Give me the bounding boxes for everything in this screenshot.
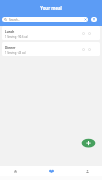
staticText: 1 Serving · 43 cal (5, 51, 26, 55)
button[interactable]: Delete (88, 48, 91, 51)
button[interactable]: Delete (88, 32, 91, 35)
button[interactable]: Profile (74, 166, 100, 176)
staticText: Search... (9, 18, 84, 22)
button[interactable]: Favourites (38, 166, 64, 176)
button[interactable]: Home (2, 166, 28, 176)
staticText: Your meal (0, 5, 102, 11)
button[interactable]: Search... (2, 17, 88, 22)
button[interactable]: Add meal (80, 137, 97, 149)
button[interactable]: Edit (82, 32, 85, 35)
button[interactable]: Lunch (2, 26, 100, 40)
button[interactable]: Edit (82, 48, 85, 51)
button[interactable]: Filter (91, 17, 97, 22)
staticText: Lunch (5, 30, 15, 34)
staticText: Dinner (5, 46, 16, 50)
staticText: 1 Serving · 90.6 cal (5, 35, 28, 39)
button[interactable]: Dinner (2, 42, 100, 56)
